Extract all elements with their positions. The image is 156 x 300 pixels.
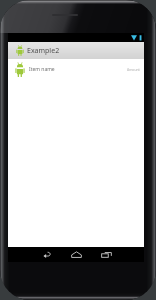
button[interactable]: Back: [31, 247, 61, 262]
staticText: Example2: [27, 46, 60, 56]
button[interactable]: Recent apps: [91, 247, 121, 262]
button[interactable]: Home: [61, 247, 91, 262]
staticText: Item name: [29, 66, 55, 73]
staticText: Amount: [127, 67, 140, 72]
button[interactable]: Item name: [8, 59, 144, 79]
